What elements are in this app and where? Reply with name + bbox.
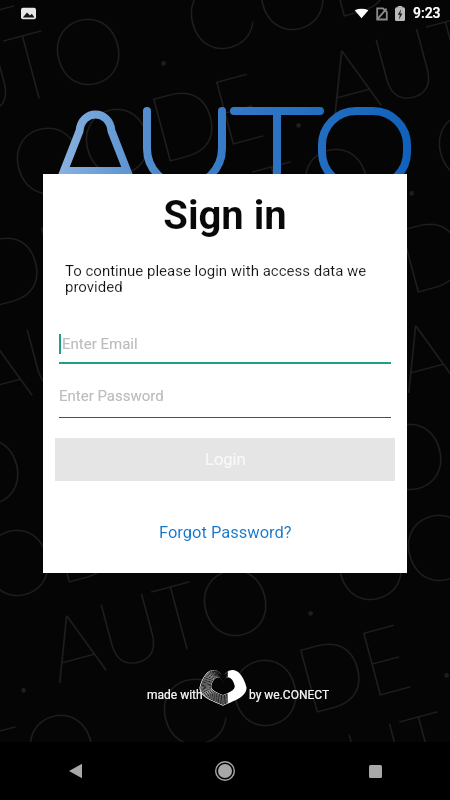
staticText: made with (147, 688, 203, 702)
staticText: 9:23 (413, 5, 441, 21)
button[interactable]: Home (203, 749, 247, 793)
staticText: by we.CONECT (249, 688, 330, 702)
staticText: Enter Password (59, 387, 164, 405)
staticText: Login (205, 450, 246, 469)
button[interactable]: Enter Email (59, 328, 391, 364)
button[interactable]: Recent apps (353, 749, 397, 793)
staticText: Sign in (43, 192, 407, 239)
button[interactable]: Forgot Password? (151, 519, 300, 546)
staticText: Enter Email (62, 335, 138, 353)
staticText: Forgot Password? (159, 523, 292, 542)
button[interactable]: Enter Password (59, 383, 391, 418)
button[interactable]: Back (53, 749, 97, 793)
staticText: To continue please login with access dat… (65, 262, 375, 296)
